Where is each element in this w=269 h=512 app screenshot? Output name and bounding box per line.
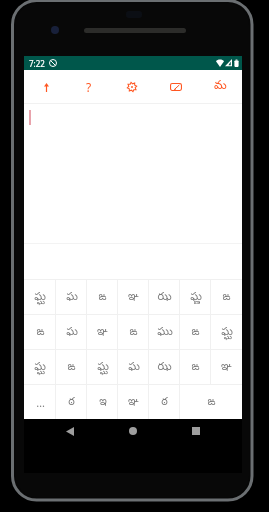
staticText: ఇ <box>99 395 107 410</box>
button[interactable]: Handwriting input <box>165 76 187 98</box>
staticText: ఘు <box>157 325 173 340</box>
button[interactable]: ఘ <box>56 315 87 349</box>
staticText: ఘ <box>66 325 78 340</box>
button[interactable]: ఘ్ఘ <box>24 280 56 314</box>
button[interactable]: ఝ <box>149 350 180 384</box>
staticText: ఙ <box>129 325 138 340</box>
button[interactable]: ఞ <box>211 350 242 384</box>
button[interactable]: ఙ <box>211 280 242 314</box>
button[interactable]: ఘ <box>118 350 149 384</box>
staticText: ఙ <box>207 395 216 410</box>
button[interactable]: ఞ <box>118 385 149 419</box>
staticText: … <box>36 395 45 410</box>
staticText: ? <box>86 79 92 95</box>
staticText: ఙ <box>191 325 200 340</box>
button[interactable]: ఙ <box>56 350 87 384</box>
staticText: ఝ <box>157 360 172 375</box>
staticText: ఘ్ఘ <box>97 360 109 375</box>
staticText: ఞ <box>128 395 139 410</box>
button[interactable]: ఝ <box>149 280 180 314</box>
button[interactable]: ఘ <box>56 280 87 314</box>
staticText: ఝ <box>157 290 172 305</box>
staticText: మ <box>214 79 227 95</box>
button[interactable]: Move up <box>35 76 57 98</box>
button[interactable]: ఇ <box>87 385 118 419</box>
button[interactable]: ఙ <box>180 315 211 349</box>
button[interactable]: ఘు <box>149 315 180 349</box>
button[interactable]: Language <box>209 76 231 98</box>
button[interactable]: Help <box>78 76 100 98</box>
staticText: ఙ <box>191 360 200 375</box>
staticText: ఞ <box>128 290 139 305</box>
button[interactable]: ఞ <box>118 280 149 314</box>
button[interactable]: ఙ <box>180 385 242 419</box>
staticText: ఘ్ఘ <box>34 290 46 305</box>
staticText: ఞ <box>221 360 232 375</box>
button[interactable]: Settings <box>121 76 143 98</box>
button[interactable]: ఙ <box>180 350 211 384</box>
button[interactable]: ఙ <box>87 280 118 314</box>
button[interactable]: ఙ <box>118 315 149 349</box>
staticText: ఙ <box>67 360 76 375</box>
button[interactable]: Back <box>58 419 82 443</box>
staticText: ఞ <box>97 325 108 340</box>
button[interactable]: ఠ <box>56 385 87 419</box>
button[interactable]: ఞ <box>87 315 118 349</box>
staticText: 7:22 <box>29 58 45 69</box>
staticText: ఙ <box>98 290 107 305</box>
staticText: ఠ <box>68 395 75 410</box>
button[interactable]: Recents <box>184 419 208 443</box>
button[interactable]: Home <box>121 419 145 443</box>
staticText: ఘ <box>128 360 140 375</box>
staticText: ఘ్ఘ <box>221 325 233 340</box>
button[interactable]: ఘ్ణ <box>180 280 211 314</box>
staticText: ఘ <box>66 290 78 305</box>
button[interactable]: ఘ్ఘ <box>211 315 242 349</box>
staticText: ఠ <box>161 395 168 410</box>
staticText: ఘ్ణ <box>190 290 202 305</box>
button[interactable]: … <box>24 385 56 419</box>
button[interactable]: ఘ్ఘ <box>87 350 118 384</box>
button[interactable]: ఠ <box>149 385 180 419</box>
button[interactable]: ఘ్ఘ <box>24 350 56 384</box>
button[interactable]: ఙ <box>24 315 56 349</box>
staticText: ఘ్ఘ <box>34 360 46 375</box>
staticText: ఙ <box>36 325 45 340</box>
staticText: ఙ <box>222 290 231 305</box>
